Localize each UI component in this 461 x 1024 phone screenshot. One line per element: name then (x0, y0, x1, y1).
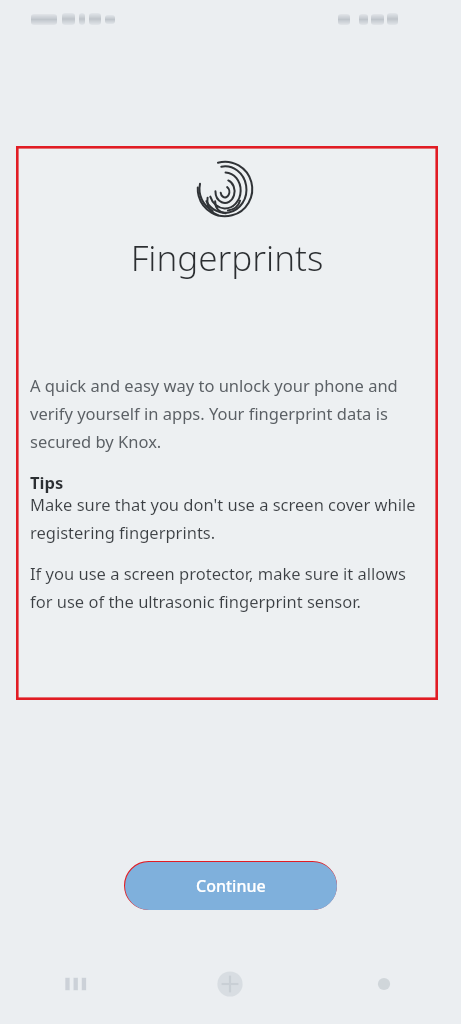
staticText: A quick and easy way to unlock your phon… (30, 374, 424, 453)
button[interactable]: Continue (121, 858, 340, 913)
button[interactable]: Recents (0, 944, 153, 1024)
staticText: Continue (196, 875, 266, 897)
staticText: If you use a screen protector, make sure… (30, 562, 424, 613)
staticText: Fingerprints (16, 234, 438, 282)
button[interactable]: Home (153, 944, 307, 1024)
staticText: Tips (30, 471, 64, 493)
staticText: Make sure that you don't use a screen co… (30, 493, 424, 544)
